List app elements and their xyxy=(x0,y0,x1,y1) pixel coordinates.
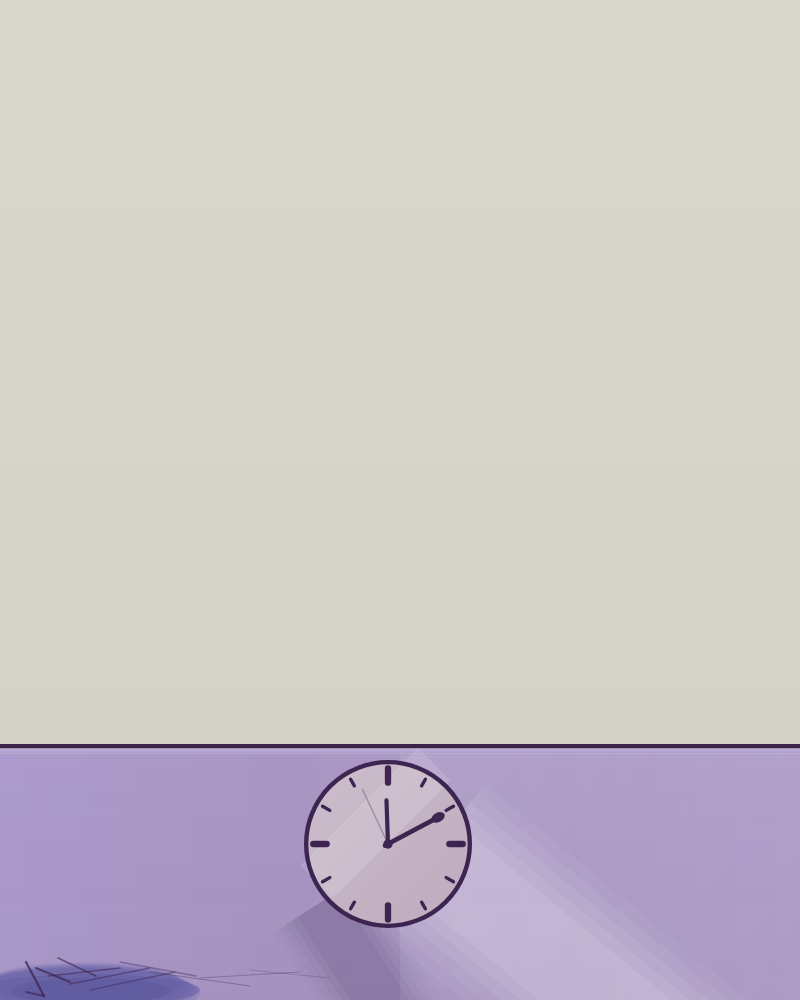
button[interactable]: Analog wall clock over a desk xyxy=(0,0,800,1000)
